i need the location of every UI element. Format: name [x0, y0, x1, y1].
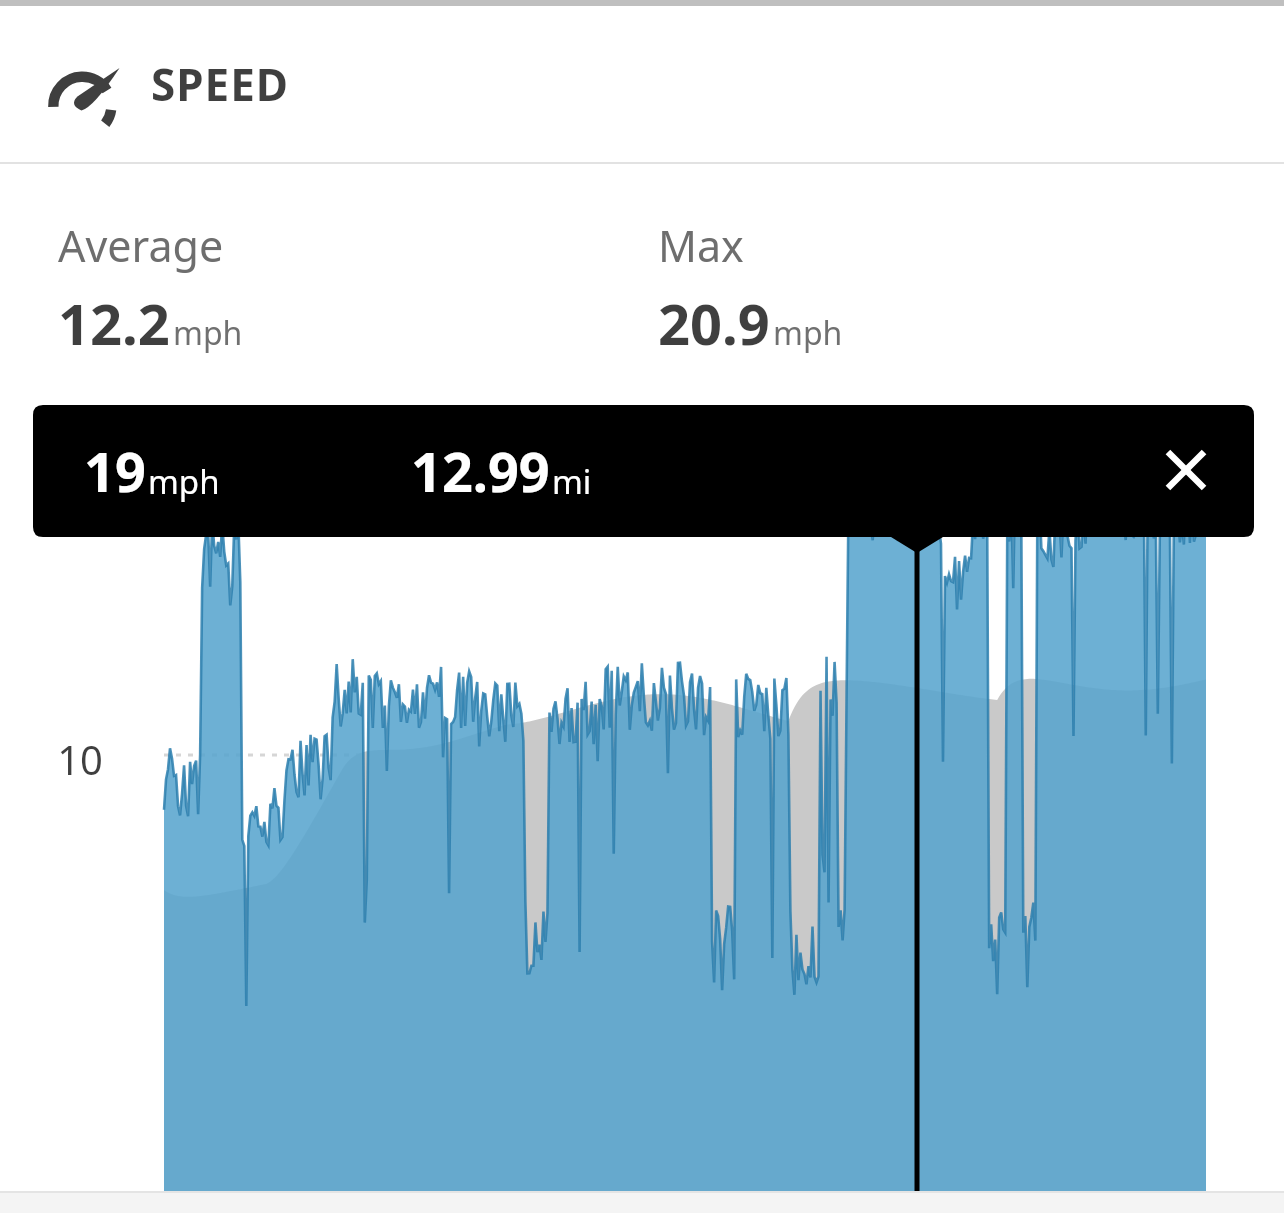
staticText: 20.9 [658, 285, 770, 361]
button[interactable]: Close [1133, 417, 1238, 522]
staticText: 19 [84, 434, 146, 508]
staticText: mph [773, 311, 843, 355]
staticText: 10 [57, 732, 103, 786]
staticText: mph [148, 459, 220, 504]
staticText: 12.2 [58, 285, 170, 361]
button[interactable]: Speed [0, 6, 1284, 162]
staticText: 12.99 [411, 434, 550, 508]
staticText: Average [58, 216, 224, 275]
staticText: mph [173, 311, 243, 355]
other: Speed [52, 58, 118, 110]
staticText: 20 [57, 465, 103, 519]
staticText: Max [658, 216, 744, 275]
staticText: SPEED [151, 54, 290, 114]
staticText: mi [552, 459, 592, 504]
